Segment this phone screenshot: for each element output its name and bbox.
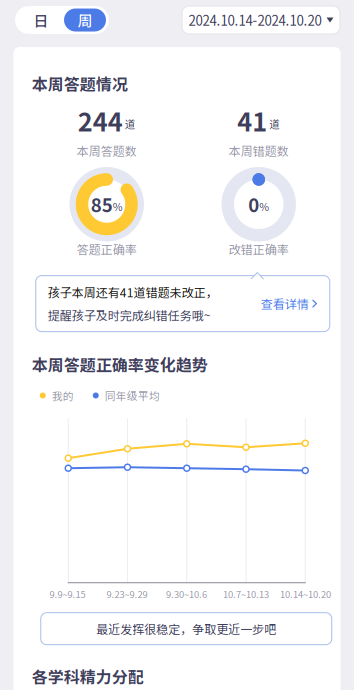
staticText: 9.23~9.29 (106, 587, 147, 601)
staticText: 2024.10.14-2024.10.20 (188, 10, 321, 30)
staticText: 改错正确率 (229, 240, 289, 258)
staticText: 各学科精力分配 (32, 665, 144, 688)
staticText: 提醒孩子及时完成纠错任务哦~ (48, 306, 211, 324)
button[interactable]: 2024.10.14-2024.10.20 (182, 6, 340, 34)
staticText: 同年级平均 (105, 388, 160, 403)
staticText: 最近发挥很稳定，争取更近一步吧 (96, 620, 276, 637)
staticText: 0 (248, 191, 259, 218)
staticText: 道 (125, 116, 136, 131)
staticText: 日 (33, 9, 48, 31)
staticText: 85 (91, 191, 113, 218)
staticText: 周 (77, 9, 92, 31)
staticText: 本周答题数 (77, 142, 137, 159)
staticText: 244 (78, 102, 123, 139)
staticText: 答题正确率 (77, 240, 137, 258)
staticText: % (259, 198, 269, 214)
staticText: 41 (237, 102, 267, 139)
staticText: 9.9~9.15 (49, 587, 85, 601)
button[interactable]: 孩子本周还有41道错题未改正， (36, 276, 330, 332)
staticText: 本周错题数 (229, 142, 289, 159)
staticText: 10.7~10.13 (223, 587, 269, 601)
staticText: 孩子本周还有41道错题未改正， (48, 283, 218, 300)
staticText: 查看详情 (261, 295, 309, 312)
button[interactable]: 周 (64, 8, 106, 31)
staticText: 10.14~10.20 (280, 587, 331, 601)
staticText: 9.30~10.6 (166, 587, 207, 601)
button[interactable]: 日 (18, 8, 64, 31)
staticText: 本周答题正确率变化趋势 (32, 353, 208, 376)
staticText: 道 (269, 116, 280, 131)
staticText: % (113, 198, 123, 214)
staticText: 本周答题情况 (32, 72, 128, 95)
staticText: 我的 (52, 388, 74, 403)
